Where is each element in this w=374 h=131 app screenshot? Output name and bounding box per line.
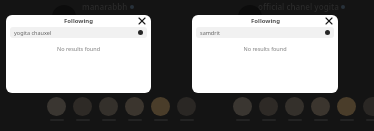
staticText: yogita chauxel xyxy=(14,29,52,36)
button[interactable] xyxy=(47,97,66,116)
button[interactable] xyxy=(177,97,196,116)
button[interactable] xyxy=(99,97,118,116)
staticText: manarabbh xyxy=(82,1,128,12)
staticText: No results found xyxy=(192,45,338,52)
button[interactable] xyxy=(73,97,92,116)
button[interactable]: yogita chauxel xyxy=(10,27,147,38)
button[interactable]: Close xyxy=(324,16,334,26)
button[interactable] xyxy=(311,97,330,116)
staticText: No results found xyxy=(6,45,151,52)
button[interactable] xyxy=(337,97,356,116)
button[interactable] xyxy=(363,97,374,116)
staticText: Following xyxy=(251,17,280,25)
button[interactable] xyxy=(285,97,304,116)
staticText: official chanel yogita xyxy=(258,1,339,12)
button[interactable]: Clear text xyxy=(138,30,143,35)
button[interactable]: samdrit xyxy=(196,27,334,38)
staticText: samdrit xyxy=(200,29,220,36)
staticText: Following xyxy=(64,17,93,25)
button[interactable] xyxy=(259,97,278,116)
button[interactable] xyxy=(233,97,252,116)
button[interactable]: Close xyxy=(137,16,147,26)
button[interactable] xyxy=(151,97,170,116)
button[interactable] xyxy=(125,97,144,116)
button[interactable]: Clear text xyxy=(325,30,330,35)
